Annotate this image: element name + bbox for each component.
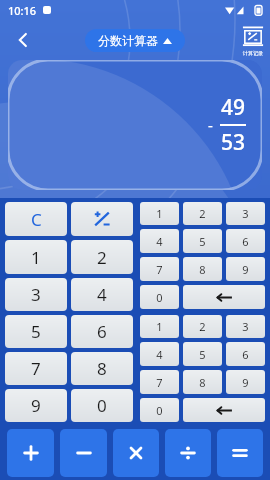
button[interactable]: 1 [5, 240, 67, 274]
staticText: 4 [97, 283, 107, 306]
button[interactable]: 9 [226, 370, 265, 394]
button[interactable]: 1 [140, 315, 179, 338]
staticText: 49 [221, 93, 246, 122]
staticText: 8 [199, 262, 206, 277]
button[interactable]: 6 [226, 342, 265, 366]
button[interactable]: 1 [140, 202, 179, 225]
button[interactable]: 9 [226, 257, 265, 281]
button[interactable]: 0 [140, 285, 179, 309]
button[interactable]: 分数计算器 [85, 29, 185, 52]
staticText: 4 [156, 234, 163, 249]
button[interactable]: Plus minus [71, 202, 133, 236]
button[interactable]: 5 [5, 315, 67, 348]
staticText: 8 [199, 375, 206, 390]
staticText: 0 [97, 394, 107, 417]
staticText: 10:16 [8, 3, 37, 18]
button[interactable]: 0 [71, 389, 133, 422]
button[interactable]: Backspace [183, 398, 265, 422]
staticText: 6 [97, 320, 107, 343]
button[interactable]: 2 [183, 202, 222, 225]
button[interactable]: 7 [140, 370, 179, 394]
button[interactable]: 8 [183, 257, 222, 281]
button[interactable]: 6 [226, 229, 265, 253]
staticText: 8 [97, 357, 107, 380]
button[interactable]: 计算记录 [241, 25, 265, 56]
button[interactable]: 4 [71, 278, 133, 311]
staticText: 6 [242, 234, 249, 249]
button[interactable]: 5 [183, 342, 222, 366]
staticText: 9 [242, 262, 249, 277]
button[interactable]: 6 [71, 315, 133, 348]
staticText: 53 [221, 128, 246, 157]
button[interactable]: 5 [183, 229, 222, 253]
staticText: 6 [242, 347, 249, 362]
button[interactable]: 3 [5, 278, 67, 311]
staticText: 9 [242, 375, 249, 390]
button[interactable]: 8 [71, 352, 133, 385]
button[interactable]: 7 [5, 352, 67, 385]
staticText: 5 [199, 347, 206, 362]
staticText: 9 [31, 394, 41, 417]
staticText: 7 [31, 357, 41, 380]
staticText: 2 [97, 246, 107, 269]
button[interactable]: − [60, 429, 107, 477]
button[interactable]: C [5, 202, 67, 236]
staticText: 2 [199, 206, 206, 221]
staticText: 5 [199, 234, 206, 249]
button[interactable]: 2 [71, 240, 133, 274]
staticText: 3 [31, 283, 41, 306]
button[interactable]: = [217, 429, 263, 477]
staticText: 1 [31, 246, 41, 269]
button[interactable]: 3 [226, 202, 265, 225]
button[interactable]: 4 [140, 229, 179, 253]
staticText: 7 [156, 375, 163, 390]
staticText: 0 [156, 403, 163, 418]
staticText: 2 [199, 319, 206, 334]
staticText: 7 [156, 262, 163, 277]
button[interactable]: Backspace [183, 285, 265, 309]
staticText: 3 [242, 319, 249, 334]
staticText: 4 [156, 347, 163, 362]
button[interactable]: 2 [183, 315, 222, 338]
staticText: 5 [31, 320, 41, 343]
button[interactable]: 4 [140, 342, 179, 366]
button[interactable]: 0 [140, 398, 179, 422]
button[interactable]: 8 [183, 370, 222, 394]
button[interactable]: 9 [5, 389, 67, 422]
staticText: 0 [156, 290, 163, 305]
button[interactable]: ÷ [165, 429, 211, 477]
staticText: 3 [242, 206, 249, 221]
button[interactable]: + [7, 429, 54, 477]
staticText: 1 [156, 206, 163, 221]
button[interactable]: 3 [226, 315, 265, 338]
staticText: C [31, 208, 42, 231]
button[interactable]: 7 [140, 257, 179, 281]
staticText: 1 [156, 319, 163, 334]
staticText: - [208, 115, 213, 135]
staticText: 计算记录 [243, 50, 263, 56]
button[interactable]: Back [6, 23, 40, 57]
staticText: 分数计算器 [98, 33, 158, 48]
button[interactable]: × [113, 429, 159, 477]
